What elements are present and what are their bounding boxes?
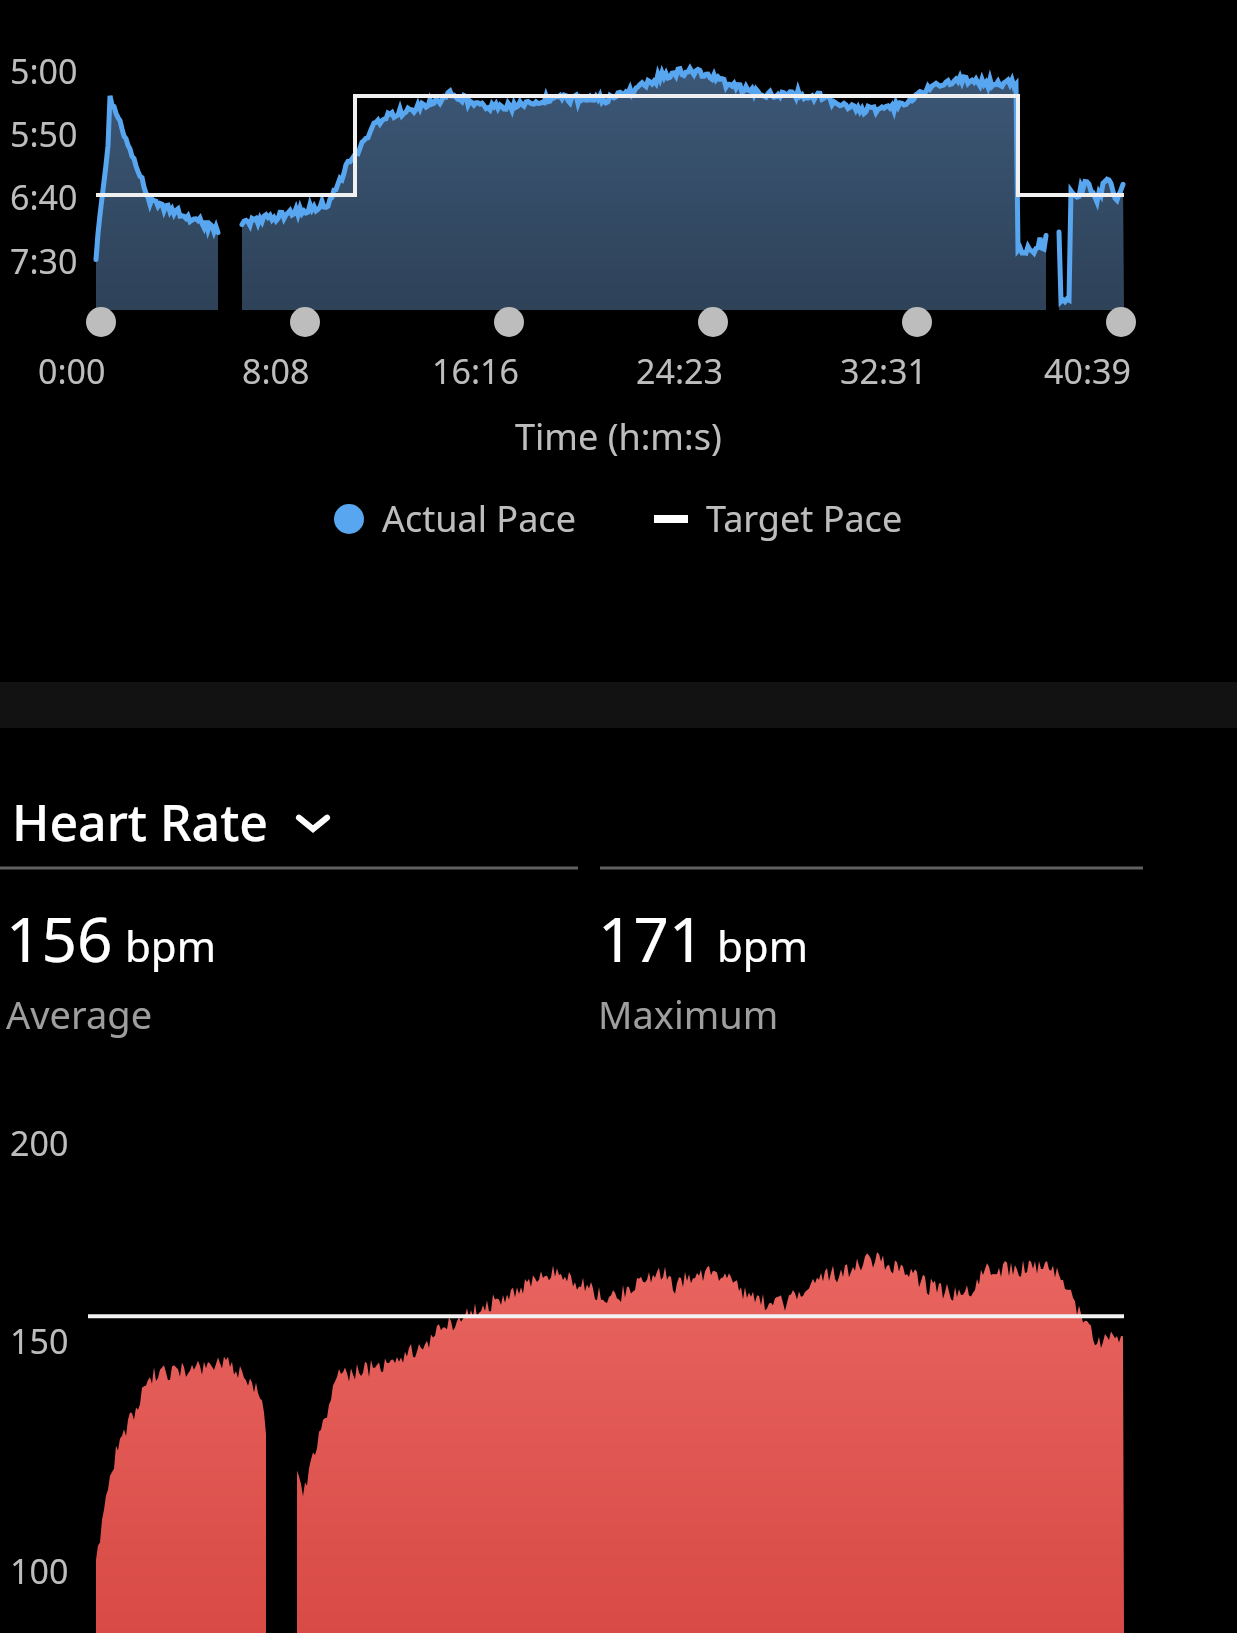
other: Expand Heart Rate [291, 800, 335, 844]
staticText: 150 [10, 1318, 69, 1364]
staticText: Heart Rate [12, 788, 269, 856]
staticText: 5:50 [10, 111, 78, 157]
staticText: Target Pace [706, 494, 903, 543]
staticText: 171 [598, 896, 705, 980]
staticText: 8:08 [242, 348, 310, 394]
button[interactable]: 156 [6, 896, 216, 1040]
staticText: 200 [10, 1120, 69, 1166]
staticText: 7:30 [10, 238, 78, 284]
staticText: 100 [10, 1548, 69, 1594]
staticText: Time (h:m:s) [515, 412, 722, 461]
button[interactable]: Target Pace [654, 494, 903, 543]
staticText: 0:00 [38, 348, 106, 394]
staticText: Actual Pace [382, 494, 576, 543]
staticText: 156 [6, 896, 113, 980]
button[interactable]: Actual Pace [334, 494, 576, 543]
button[interactable]: Heart Rate [8, 784, 339, 860]
staticText: Maximum [598, 988, 779, 1040]
button[interactable]: 171 [598, 896, 808, 1040]
staticText: 6:40 [10, 174, 78, 220]
staticText: 40:39 [1044, 348, 1131, 394]
staticText: Average [6, 988, 153, 1040]
staticText: bpm [125, 917, 216, 974]
staticText: 32:31 [840, 348, 927, 394]
staticText: 16:16 [432, 348, 519, 394]
staticText: bpm [717, 917, 808, 974]
staticText: 5:00 [10, 48, 78, 94]
staticText: 24:23 [636, 348, 723, 394]
